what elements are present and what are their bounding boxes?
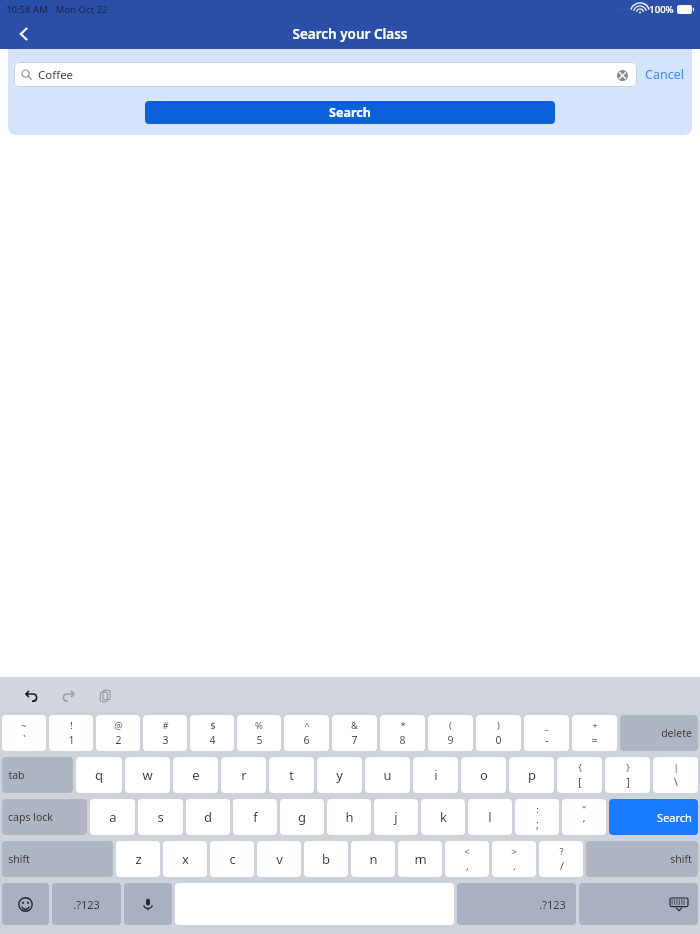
button[interactable]: t [269, 757, 314, 793]
button[interactable]: ! [49, 715, 93, 751]
button[interactable]: o [461, 757, 506, 793]
button[interactable]: h [327, 799, 371, 835]
button[interactable] [124, 883, 172, 925]
button[interactable]: Search [145, 101, 555, 124]
button[interactable]: ) [476, 715, 521, 751]
staticText: , [466, 859, 469, 873]
button[interactable]: Undo [16, 680, 46, 710]
button[interactable]: Back [8, 18, 40, 49]
staticText: c [229, 850, 236, 868]
staticText: 7 [351, 733, 358, 747]
button[interactable]: u [365, 757, 410, 793]
button[interactable]: “ [562, 799, 606, 835]
staticText: : [536, 803, 539, 816]
button[interactable]: > [492, 841, 536, 877]
button[interactable]: | [653, 757, 698, 793]
button[interactable]: w [125, 757, 170, 793]
button[interactable]: ( [428, 715, 473, 751]
staticText: Cancel [645, 66, 684, 83]
button[interactable]: & [332, 715, 377, 751]
button[interactable]: g [280, 799, 324, 835]
button[interactable]: i [413, 757, 458, 793]
staticText: .?123 [73, 897, 100, 912]
button[interactable]: Search [609, 799, 698, 835]
staticText: . [513, 859, 516, 873]
button[interactable]: % [237, 715, 281, 751]
staticText: ? [559, 845, 564, 858]
button[interactable]: $ [190, 715, 234, 751]
button[interactable]: x [163, 841, 207, 877]
staticText: i [434, 766, 438, 784]
button[interactable]: Coffee [14, 62, 637, 87]
staticText: Search your Class [292, 25, 408, 43]
button[interactable]: } [605, 757, 650, 793]
button[interactable]: tab [2, 757, 73, 793]
button[interactable]: j [374, 799, 418, 835]
staticText: a [109, 808, 117, 826]
button[interactable]: < [445, 841, 489, 877]
staticText: m [414, 850, 427, 868]
staticText: j [394, 808, 398, 826]
button[interactable]: Clear text [614, 67, 630, 83]
button[interactable]: shift [2, 841, 113, 877]
staticText: ` [23, 733, 26, 747]
staticText: Search [657, 810, 692, 825]
staticText: ; [536, 817, 539, 831]
button[interactable]: v [257, 841, 301, 877]
button[interactable]: l [468, 799, 512, 835]
button[interactable]: + [572, 715, 617, 751]
button[interactable]: c [210, 841, 254, 877]
button[interactable]: # [143, 715, 187, 751]
button[interactable]: * [380, 715, 425, 751]
button[interactable]: s [138, 799, 183, 835]
staticText: n [369, 850, 378, 868]
staticText: @ [114, 719, 123, 732]
button[interactable]: k [421, 799, 465, 835]
button[interactable]: ~ [2, 715, 46, 751]
button[interactable]: z [116, 841, 160, 877]
staticText: 100% [649, 3, 674, 16]
button[interactable]: r [221, 757, 266, 793]
button[interactable]: a [90, 799, 135, 835]
staticText: q [95, 766, 103, 784]
button[interactable]: b [304, 841, 348, 877]
button[interactable]: ? [539, 841, 583, 877]
button[interactable]: delete [620, 715, 698, 751]
button[interactable]: Redo [53, 680, 83, 710]
button[interactable] [579, 883, 698, 925]
button[interactable]: shift [586, 841, 698, 877]
staticText: \ [674, 775, 678, 789]
staticText: # [162, 719, 169, 732]
button[interactable]: m [398, 841, 442, 877]
staticText: b [322, 850, 330, 868]
button[interactable]: d [186, 799, 230, 835]
button[interactable]: Paste [90, 680, 120, 710]
staticText: shift [670, 852, 692, 866]
staticText: ~ [21, 719, 27, 732]
button[interactable]: p [509, 757, 554, 793]
staticText: z [135, 850, 142, 868]
button[interactable]: .?123 [52, 883, 121, 925]
button[interactable]: : [515, 799, 559, 835]
staticText: Search [329, 104, 371, 121]
button[interactable]: n [351, 841, 395, 877]
button[interactable]: caps lock [2, 799, 87, 835]
staticText: ’ [583, 817, 585, 831]
button[interactable]: @ [96, 715, 140, 751]
staticText: < [464, 845, 470, 858]
button[interactable]: e [173, 757, 218, 793]
staticText: o [480, 766, 488, 784]
button[interactable]: y [317, 757, 362, 793]
button[interactable]: .?123 [457, 883, 576, 925]
button[interactable]: f [233, 799, 277, 835]
button[interactable]: { [557, 757, 602, 793]
staticText: / [560, 859, 564, 873]
button[interactable]: _ [524, 715, 569, 751]
button[interactable] [2, 883, 49, 925]
staticText: caps lock [8, 810, 53, 824]
staticText: ^ [304, 719, 310, 732]
button[interactable]: ^ [284, 715, 329, 751]
button[interactable]: q [76, 757, 122, 793]
button[interactable]: Cancel [645, 66, 684, 83]
